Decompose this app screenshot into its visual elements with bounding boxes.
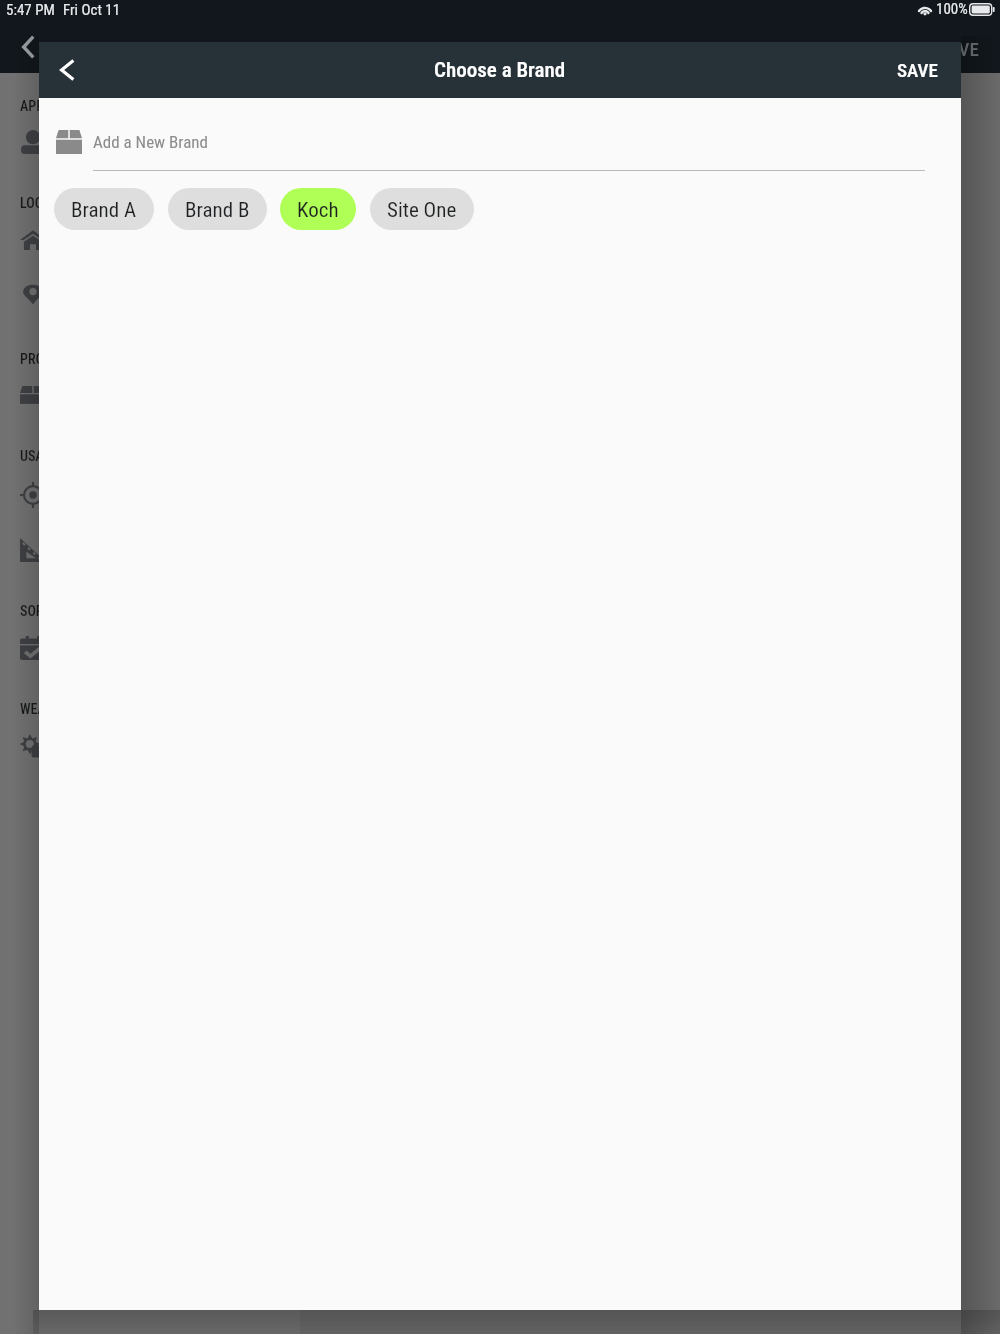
staticText: 5:47 PM — [6, 1, 55, 19]
staticText: SAVE — [897, 59, 938, 81]
staticText: USAGE — [20, 448, 59, 464]
staticText: LOCATIONS — [20, 195, 86, 211]
button[interactable] — [20, 538, 46, 562]
button[interactable]: SAVE — [874, 42, 961, 98]
staticText: SAVE — [938, 38, 979, 60]
button[interactable]: Site One — [370, 188, 474, 230]
button[interactable] — [20, 284, 46, 305]
button[interactable] — [20, 734, 46, 758]
staticText: SORTING — [20, 603, 72, 619]
button[interactable] — [20, 229, 46, 251]
staticText: PRODUCTS — [20, 351, 83, 367]
staticText: Site One — [387, 198, 457, 223]
button[interactable] — [20, 383, 46, 407]
button[interactable]: Brand A — [54, 188, 154, 230]
staticText: APPLICATION — [20, 98, 99, 114]
button[interactable] — [20, 130, 46, 154]
staticText: Fri Oct 11 — [63, 1, 121, 19]
button[interactable] — [20, 636, 46, 660]
button[interactable] — [20, 482, 46, 504]
staticText: WEATHER — [20, 701, 76, 717]
staticText: Brand B — [185, 198, 250, 223]
staticText: Add a New Brand — [93, 132, 209, 152]
staticText: 100% — [936, 0, 968, 18]
staticText: Koch — [297, 198, 339, 223]
button[interactable]: Brand B — [168, 188, 267, 230]
staticText: Brand A — [71, 198, 137, 223]
button[interactable]: Back — [42, 45, 92, 95]
button[interactable]: Back — [14, 33, 42, 61]
staticText: Choose a Brand — [434, 58, 566, 83]
button[interactable]: Koch — [280, 188, 356, 230]
